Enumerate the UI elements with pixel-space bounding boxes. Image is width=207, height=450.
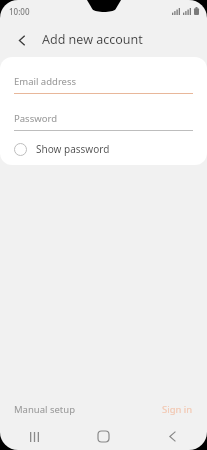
button[interactable]: Email address [14, 75, 193, 94]
button[interactable]: Recent apps [0, 423, 69, 450]
staticText: 10:00 [9, 6, 30, 17]
staticText: Sign in [162, 403, 193, 416]
button[interactable]: Manual setup [0, 399, 83, 420]
staticText: Manual setup [14, 403, 75, 416]
staticText: Password [14, 112, 57, 125]
staticText: Email address [14, 75, 77, 88]
button[interactable]: Home [69, 423, 138, 450]
button[interactable]: Show password [14, 142, 193, 156]
button[interactable]: Sign in [154, 399, 207, 420]
button[interactable]: Password [14, 112, 193, 131]
staticText: Add new account [42, 31, 143, 48]
staticText: Show password [36, 142, 110, 156]
button[interactable]: Back [138, 423, 207, 450]
button[interactable]: Back [10, 28, 34, 52]
